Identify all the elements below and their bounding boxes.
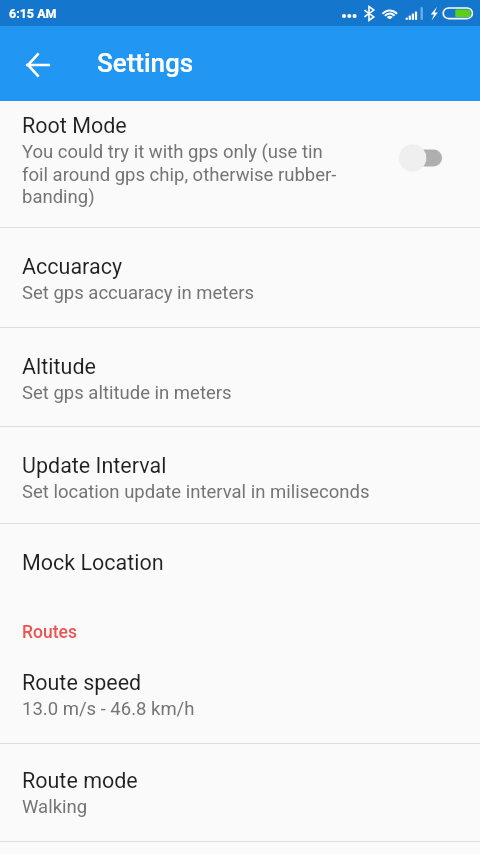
staticText: Accuaracy	[22, 254, 123, 279]
staticText: Settings	[97, 48, 194, 78]
staticText: Route speed	[22, 670, 142, 695]
staticText: Walking	[22, 796, 342, 818]
staticText: 6:15 AM	[9, 6, 57, 21]
staticText: Routes	[22, 622, 77, 643]
button[interactable]: Altitude	[0, 328, 480, 426]
button[interactable]: Mock Location	[0, 524, 480, 601]
button[interactable]: Back	[14, 41, 61, 88]
staticText: Altitude	[22, 354, 96, 379]
button[interactable]: Route speed	[0, 669, 480, 743]
staticText: 13.0 m/s - 46.8 km/h	[22, 698, 342, 720]
button[interactable]: Accuaracy	[0, 228, 480, 327]
staticText: Set gps altitude in meters	[22, 382, 342, 404]
staticText: Update Interval	[22, 453, 167, 478]
staticText: Set location update interval in miliseco…	[22, 481, 422, 503]
staticText: Root Mode	[22, 113, 127, 138]
button[interactable]: Update Interval	[0, 427, 480, 523]
staticText: You could try it with gps only (use tin …	[22, 141, 344, 207]
staticText: Set gps accuaracy in meters	[22, 282, 342, 304]
button[interactable]: Root mode toggle	[388, 130, 480, 186]
button[interactable]: Route mode	[0, 744, 480, 841]
button[interactable]: Root Mode	[0, 101, 480, 227]
staticText: Mock Location	[22, 550, 164, 575]
staticText: Route mode	[22, 768, 138, 793]
